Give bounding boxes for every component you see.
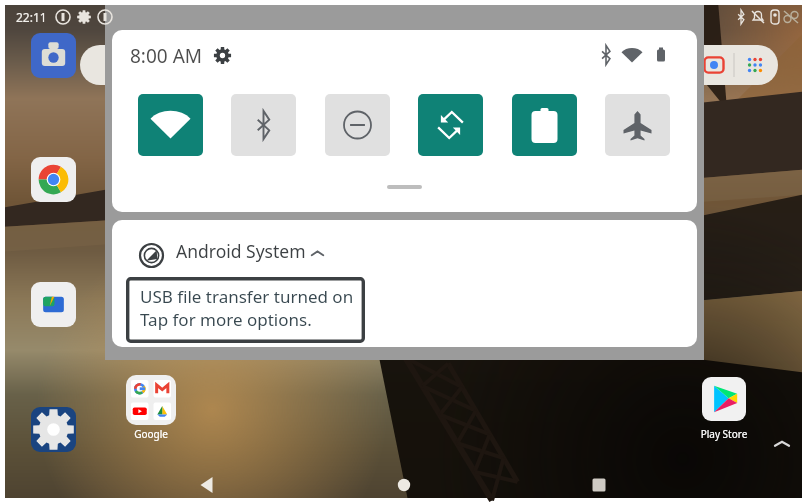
button[interactable] [702, 377, 746, 421]
button[interactable]: Home [389, 470, 419, 500]
button[interactable] [80, 45, 778, 85]
button[interactable] [126, 375, 176, 425]
button[interactable]: Bluetooth [231, 94, 296, 156]
button[interactable]: USB file transfer turned on [126, 277, 365, 343]
staticText: USB file transfer turned on [140, 285, 354, 308]
staticText: 22:11 [16, 9, 47, 25]
staticText: Android System [176, 239, 306, 263]
button[interactable]: chrome [31, 157, 76, 202]
button[interactable]: Airplane mode [605, 94, 670, 156]
button[interactable]: Auto-rotate [418, 94, 483, 156]
staticText: Tap for more options. [140, 308, 312, 331]
button[interactable]: Back [193, 470, 223, 500]
button[interactable]: files [31, 282, 76, 327]
button[interactable]: camera [31, 33, 76, 78]
staticText: Play Store [692, 427, 756, 441]
button[interactable]: Do not disturb [325, 94, 390, 156]
button[interactable] [387, 185, 422, 189]
staticText: Google [120, 427, 182, 441]
button[interactable]: Android System [112, 220, 697, 347]
button[interactable]: Recents [584, 470, 614, 500]
button[interactable]: Settings [213, 46, 232, 65]
staticText: 8:00 AM [130, 43, 203, 69]
button[interactable]: Battery saver [512, 94, 577, 156]
button[interactable]: settings [31, 407, 76, 452]
button[interactable]: Wi-Fi [138, 94, 203, 156]
button[interactable]: Open app drawer [771, 433, 793, 455]
